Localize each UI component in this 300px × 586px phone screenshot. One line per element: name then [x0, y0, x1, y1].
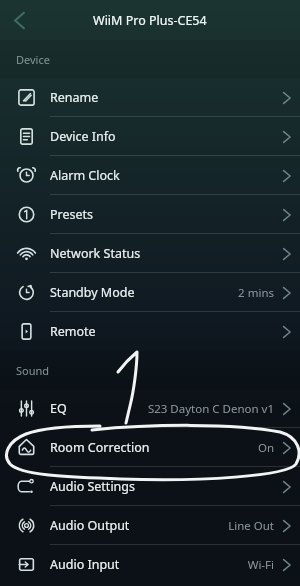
- staticText: EQ: [50, 400, 67, 417]
- button[interactable]: Audio Output: [0, 506, 300, 545]
- staticText: Audio Settings: [50, 478, 136, 495]
- button[interactable]: Audio Input: [0, 545, 300, 584]
- staticText: 2 mins: [238, 285, 274, 301]
- staticText: Sound: [16, 363, 50, 378]
- button[interactable]: Room Correction: [0, 428, 300, 467]
- staticText: Remote: [50, 323, 96, 340]
- button[interactable]: Standby Mode: [0, 273, 300, 312]
- button[interactable]: Rename: [0, 78, 300, 117]
- staticText: S23 Dayton C Denon v1: [147, 401, 274, 417]
- button[interactable]: Back: [0, 1, 38, 39]
- staticText: Network Status: [50, 245, 141, 262]
- staticText: Presets: [50, 206, 94, 223]
- staticText: Alarm Clock: [50, 167, 120, 184]
- staticText: Device: [16, 52, 50, 67]
- staticText: Device Info: [50, 128, 116, 145]
- staticText: Audio Input: [50, 556, 120, 573]
- staticText: WiiM Pro Plus-CE54: [93, 12, 207, 29]
- staticText: Audio Output: [50, 517, 130, 534]
- staticText: Rename: [50, 89, 99, 106]
- button[interactable]: Device Info: [0, 117, 300, 156]
- staticText: Wi-Fi: [247, 557, 274, 573]
- button[interactable]: EQ: [0, 389, 300, 428]
- staticText: Standby Mode: [50, 284, 135, 301]
- button[interactable]: Network Status: [0, 234, 300, 273]
- button[interactable]: Presets: [0, 195, 300, 234]
- staticText: Line Out: [228, 518, 274, 534]
- button[interactable]: Audio Settings: [0, 467, 300, 506]
- button[interactable]: Remote: [0, 312, 300, 351]
- staticText: On: [257, 440, 274, 456]
- button[interactable]: Alarm Clock: [0, 156, 300, 195]
- staticText: Room Correction: [50, 439, 150, 456]
